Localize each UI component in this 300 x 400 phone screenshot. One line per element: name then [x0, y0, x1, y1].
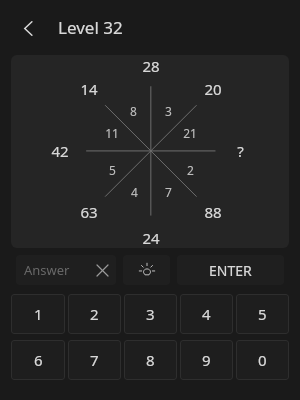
- staticText: Level 32: [58, 16, 123, 39]
- staticText: 6: [34, 350, 43, 370]
- button[interactable]: 4: [180, 294, 233, 334]
- button[interactable]: ENTER: [177, 255, 284, 285]
- staticText: 4: [202, 304, 211, 324]
- staticText: 1: [34, 304, 43, 324]
- button[interactable]: 9: [180, 340, 233, 380]
- staticText: 24: [142, 228, 160, 248]
- staticText: 42: [51, 141, 69, 161]
- staticText: 0: [258, 350, 267, 370]
- button[interactable]: Hint: [123, 255, 170, 285]
- staticText: 8: [130, 103, 137, 119]
- staticText: 21: [183, 125, 197, 141]
- staticText: 11: [105, 125, 119, 141]
- staticText: 9: [202, 350, 211, 370]
- staticText: 2: [187, 162, 194, 178]
- staticText: 88: [204, 202, 222, 222]
- staticText: 3: [165, 103, 172, 119]
- staticText: 7: [165, 184, 172, 200]
- button[interactable]: 5: [236, 294, 289, 334]
- button[interactable]: 2: [68, 294, 121, 334]
- staticText: 5: [109, 162, 116, 178]
- staticText: 2: [90, 304, 99, 324]
- staticText: 63: [80, 202, 98, 222]
- staticText: 4: [131, 184, 138, 200]
- staticText: Answer: [24, 261, 70, 279]
- button[interactable]: 3: [124, 294, 177, 334]
- staticText: 7: [90, 350, 99, 370]
- button[interactable]: 6: [11, 340, 65, 380]
- button[interactable]: 7: [68, 340, 121, 380]
- staticText: 3: [146, 304, 155, 324]
- button[interactable]: 8: [124, 340, 177, 380]
- staticText: ?: [237, 141, 244, 161]
- button[interactable]: 0: [236, 340, 289, 380]
- staticText: 8: [146, 350, 155, 370]
- button[interactable]: Back: [10, 10, 46, 46]
- staticText: 20: [204, 79, 222, 99]
- button[interactable]: 1: [11, 294, 65, 334]
- staticText: ENTER: [209, 261, 252, 280]
- button[interactable]: Answer: [16, 255, 116, 285]
- staticText: 28: [142, 56, 160, 76]
- staticText: 5: [258, 304, 267, 324]
- staticText: 14: [80, 79, 98, 99]
